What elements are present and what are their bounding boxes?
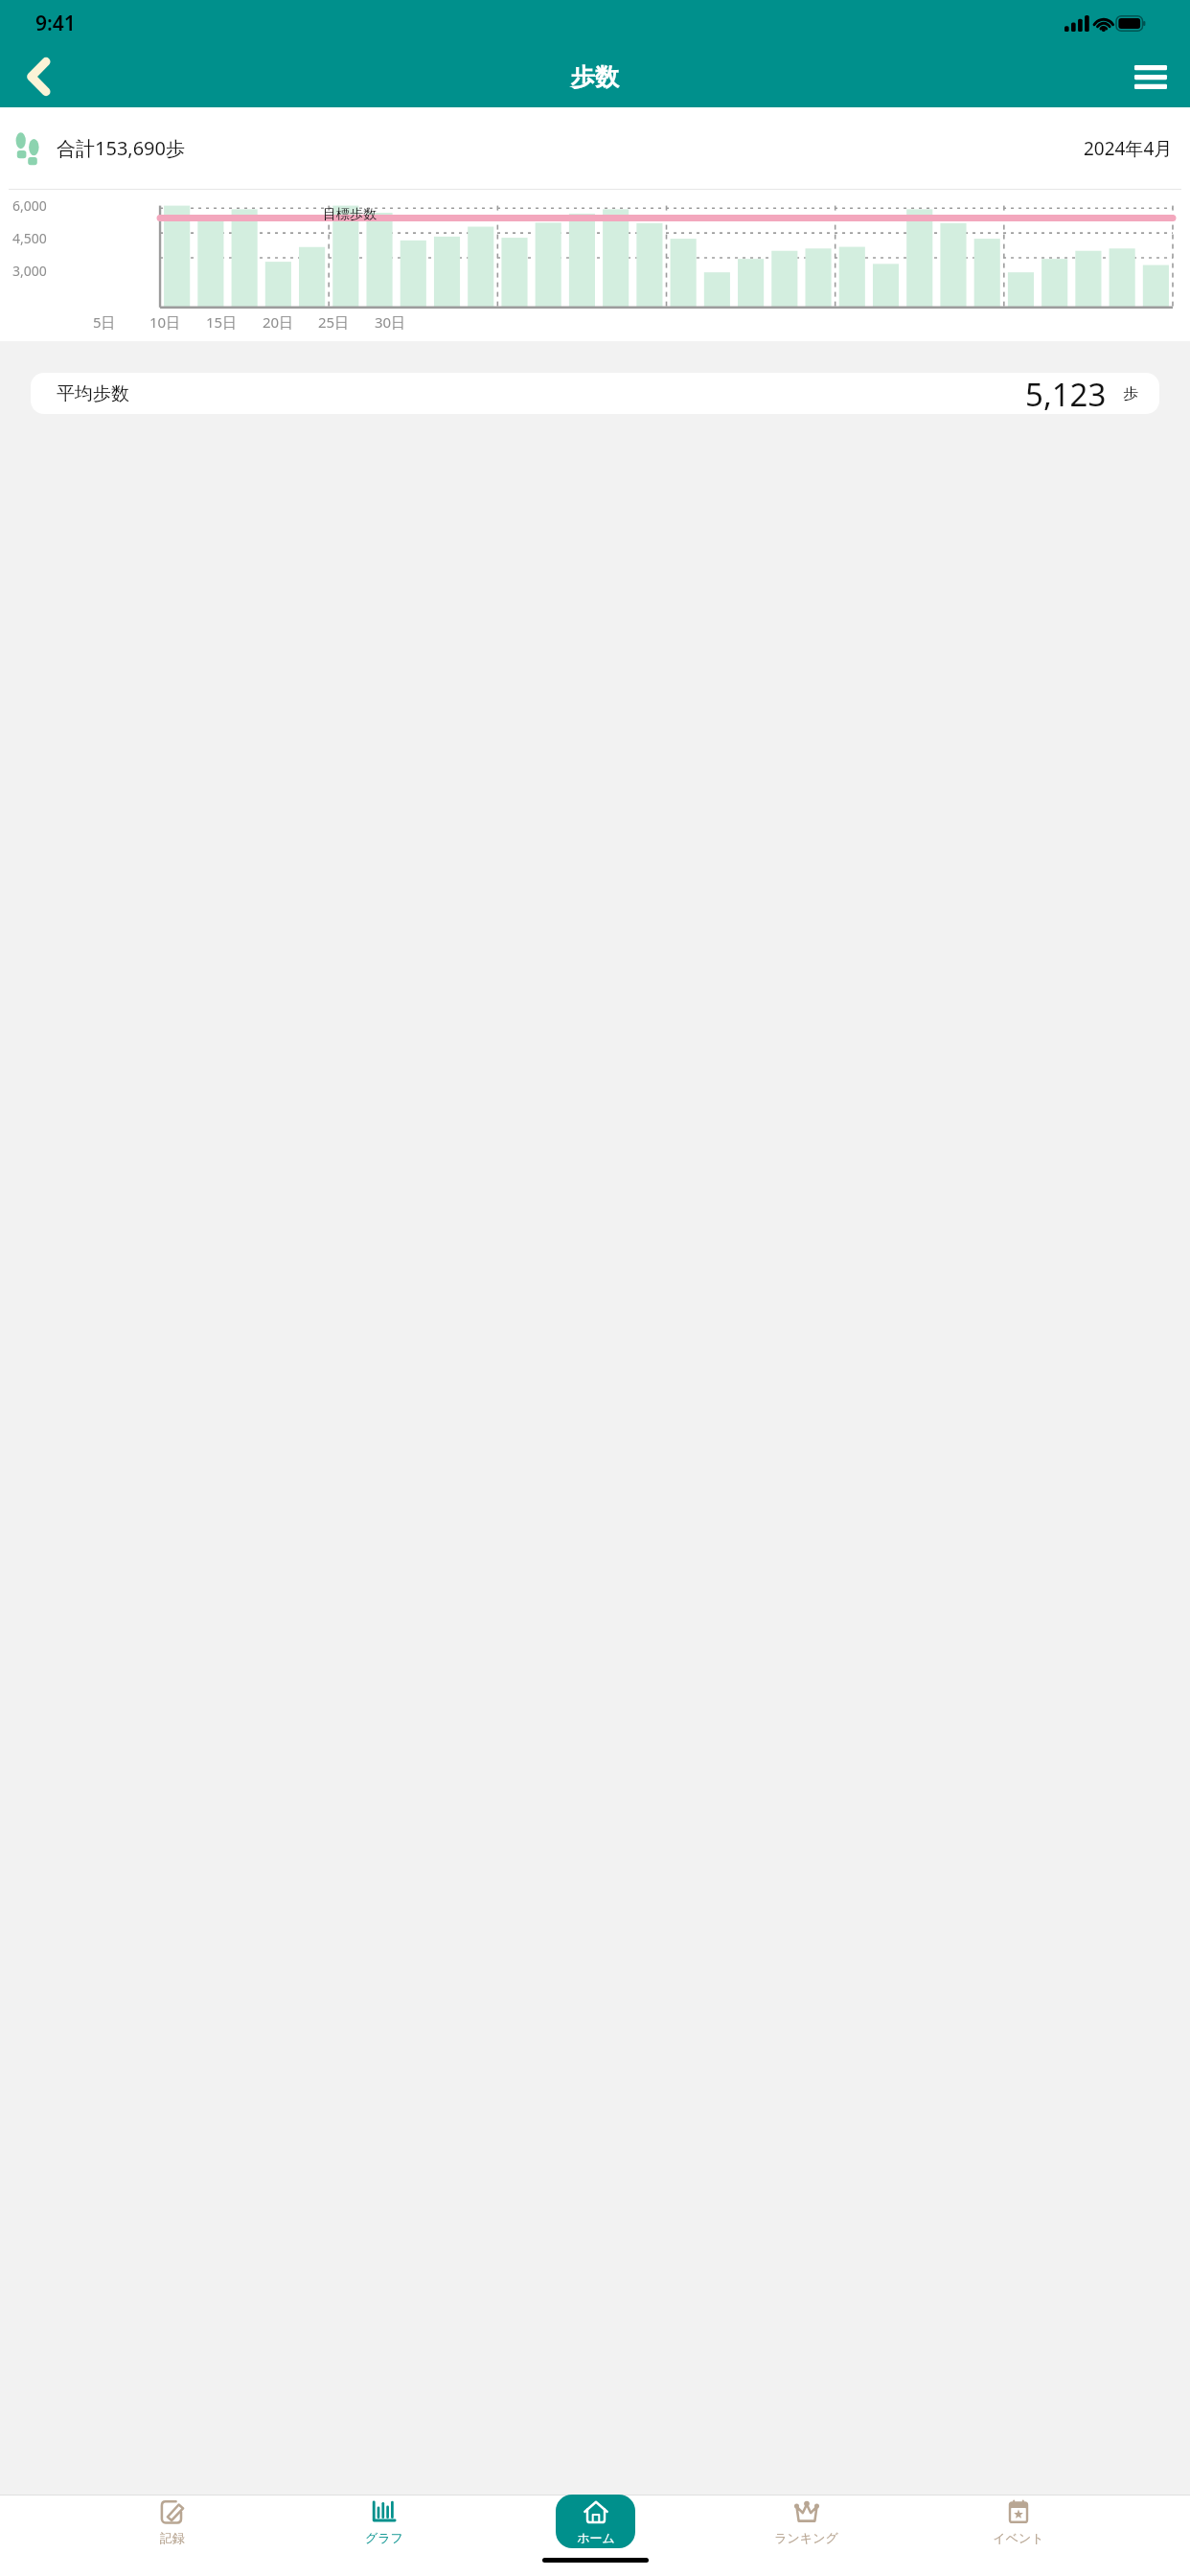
staticText: 20日: [263, 312, 294, 332]
staticText: 歩数: [571, 62, 619, 92]
staticText: 平均歩数: [57, 382, 129, 405]
staticText: 記録: [160, 2530, 185, 2545]
button[interactable]: イベント: [978, 2495, 1058, 2548]
staticText: ホーム: [577, 2530, 615, 2545]
button[interactable]: ランキング: [767, 2495, 846, 2548]
staticText: 3,000: [12, 262, 47, 280]
button[interactable]: 記録: [132, 2495, 212, 2548]
button[interactable]: グラフ: [344, 2495, 423, 2548]
staticText: 9:41: [35, 10, 76, 37]
staticText: 25日: [318, 312, 350, 332]
staticText: 5,123: [1025, 373, 1107, 414]
staticText: 5日: [93, 312, 116, 332]
staticText: 6,000: [12, 196, 47, 215]
staticText: 10日: [149, 312, 181, 332]
staticText: グラフ: [365, 2530, 403, 2545]
button[interactable]: Back: [10, 47, 69, 106]
button[interactable]: 平均歩数: [31, 373, 1159, 414]
button[interactable]: Menu: [1121, 47, 1180, 106]
staticText: 合計153,690歩: [57, 135, 185, 161]
button[interactable]: 2024年4月: [1084, 136, 1173, 161]
button[interactable]: ホーム: [556, 2495, 635, 2548]
staticText: 目標歩数: [323, 206, 377, 223]
staticText: 15日: [206, 312, 238, 332]
staticText: 4,500: [12, 229, 47, 247]
staticText: ランキング: [774, 2530, 838, 2545]
staticText: 30日: [375, 312, 406, 332]
staticText: イベント: [993, 2530, 1044, 2545]
staticText: 歩: [1123, 384, 1138, 403]
